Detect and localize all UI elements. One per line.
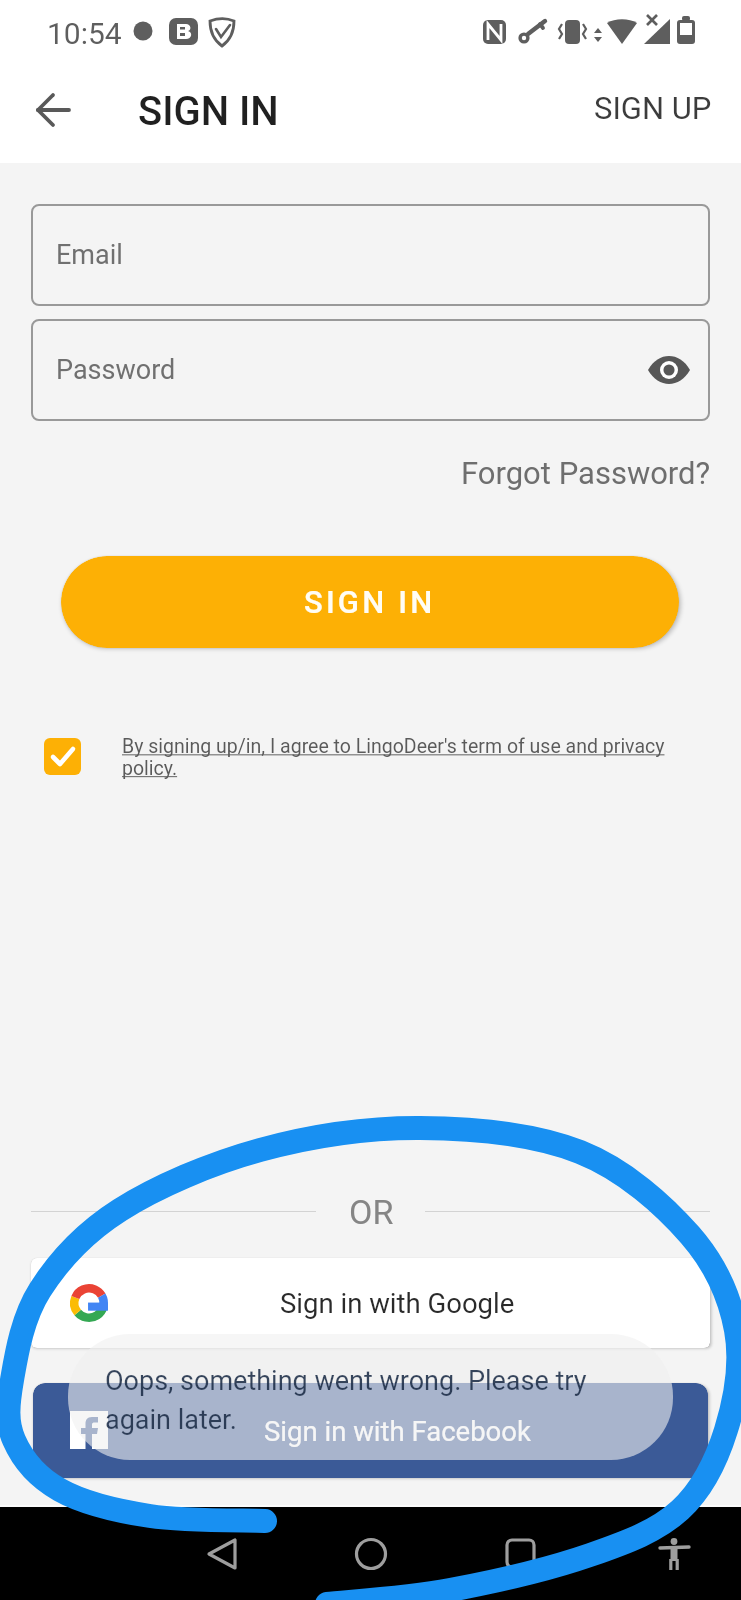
- staticText: SIGN IN: [304, 584, 436, 620]
- staticText: SIGN UP: [594, 90, 712, 126]
- button[interactable]: Sign in with Facebook: [33, 1383, 708, 1478]
- button[interactable]: Recent apps: [489, 1522, 553, 1586]
- staticText: SIGN IN: [138, 88, 279, 135]
- staticText: Password: [56, 354, 176, 386]
- button[interactable]: By signing up/in, I agree to LingoDeer's…: [122, 735, 667, 780]
- button[interactable]: Email: [31, 204, 710, 306]
- button[interactable]: Password: [31, 319, 710, 421]
- staticText: Forgot Password?: [461, 455, 711, 491]
- staticText: Oops, something went wrong. Please try a…: [105, 1365, 595, 1435]
- staticText: OR: [349, 1192, 394, 1232]
- button[interactable]: Back: [21, 76, 87, 142]
- button[interactable]: Accessibility: [646, 1526, 702, 1582]
- button[interactable]: SIGN IN: [61, 556, 679, 648]
- button[interactable]: Sign in with Google: [31, 1258, 710, 1348]
- button[interactable]: SIGN UP: [590, 86, 716, 130]
- staticText: Sign in with Facebook: [264, 1415, 531, 1447]
- button[interactable]: Agree to terms checkbox: [44, 738, 81, 775]
- button[interactable]: Show password: [640, 341, 698, 399]
- button[interactable]: Forgot Password?: [455, 451, 717, 495]
- staticText: Email: [56, 239, 123, 271]
- staticText: By signing up/in, I agree to LingoDeer's…: [122, 735, 667, 780]
- button[interactable]: Back: [189, 1522, 253, 1586]
- staticText: 10:54: [47, 16, 122, 51]
- staticText: Sign in with Google: [280, 1287, 515, 1319]
- button[interactable]: Home: [339, 1522, 403, 1586]
